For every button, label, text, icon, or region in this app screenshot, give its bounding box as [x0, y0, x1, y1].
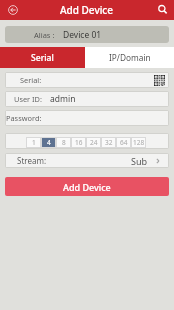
staticText: Add Device — [60, 3, 114, 17]
staticText: Serial — [31, 52, 54, 64]
button[interactable]: Search — [156, 3, 170, 17]
staticText: Sub — [131, 155, 148, 167]
button[interactable]: 24 — [87, 138, 100, 147]
staticText: Serial: — [20, 75, 42, 85]
button[interactable]: 1 — [27, 138, 40, 147]
staticText: 128 — [133, 138, 145, 147]
staticText: 4 — [47, 138, 51, 147]
staticText: Device 01 — [63, 29, 102, 41]
button[interactable]: Serial: — [6, 73, 168, 87]
staticText: 32 — [105, 138, 113, 147]
button[interactable]: Alias : — [5, 26, 169, 43]
staticText: Add Device — [63, 181, 111, 193]
staticText: 16 — [75, 138, 83, 147]
staticText: User ID: — [14, 94, 42, 104]
staticText: 8 — [62, 138, 66, 147]
staticText: 1 — [32, 138, 36, 147]
staticText: Password: — [6, 113, 42, 123]
staticText: Stream: — [17, 155, 47, 166]
button[interactable]: Add Device — [5, 177, 169, 196]
button[interactable]: Serial — [0, 47, 85, 68]
button[interactable]: 4 — [42, 138, 55, 147]
staticText: 64 — [120, 138, 128, 147]
button[interactable]: Scan QR code — [154, 75, 165, 86]
staticText: 24 — [90, 138, 98, 147]
staticText: Alias : — [34, 30, 55, 40]
staticText: IP/Domain — [109, 52, 151, 63]
button[interactable]: Back — [5, 2, 21, 18]
button[interactable]: Password: — [6, 111, 168, 125]
button[interactable]: IP/Domain — [85, 47, 174, 68]
button[interactable]: 16 — [72, 138, 85, 147]
button[interactable]: 32 — [102, 138, 115, 147]
button[interactable]: User ID: — [6, 92, 168, 106]
button[interactable]: 128 — [132, 138, 145, 147]
staticText: admin — [50, 93, 76, 105]
button[interactable]: 64 — [117, 138, 130, 147]
button[interactable]: 8 — [57, 138, 70, 147]
button[interactable]: Stream: — [6, 154, 168, 167]
